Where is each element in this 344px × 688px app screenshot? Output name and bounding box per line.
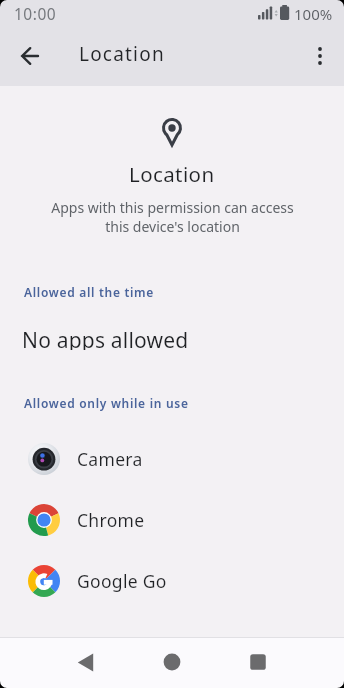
button[interactable] bbox=[12, 38, 48, 74]
staticText: No apps allowed bbox=[22, 326, 189, 350]
button[interactable]: Chrome bbox=[0, 492, 344, 548]
button[interactable]: Google Go bbox=[0, 553, 344, 609]
button[interactable] bbox=[234, 637, 282, 687]
staticText: Allowed all the time bbox=[24, 284, 155, 300]
button[interactable] bbox=[61, 637, 109, 687]
button[interactable] bbox=[304, 41, 336, 73]
staticText: Apps with this permission can access thi… bbox=[51, 198, 294, 236]
staticText: Location bbox=[129, 160, 215, 186]
staticText: Location bbox=[79, 41, 165, 67]
button[interactable]: Camera bbox=[0, 431, 344, 487]
button[interactable] bbox=[148, 637, 196, 687]
staticText: 100% bbox=[294, 4, 333, 24]
staticText: 10:00 bbox=[14, 3, 57, 24]
staticText: Google Go bbox=[77, 569, 167, 593]
staticText: Camera bbox=[77, 447, 143, 471]
staticText: Chrome bbox=[77, 508, 145, 532]
staticText: Allowed only while in use bbox=[24, 395, 189, 411]
